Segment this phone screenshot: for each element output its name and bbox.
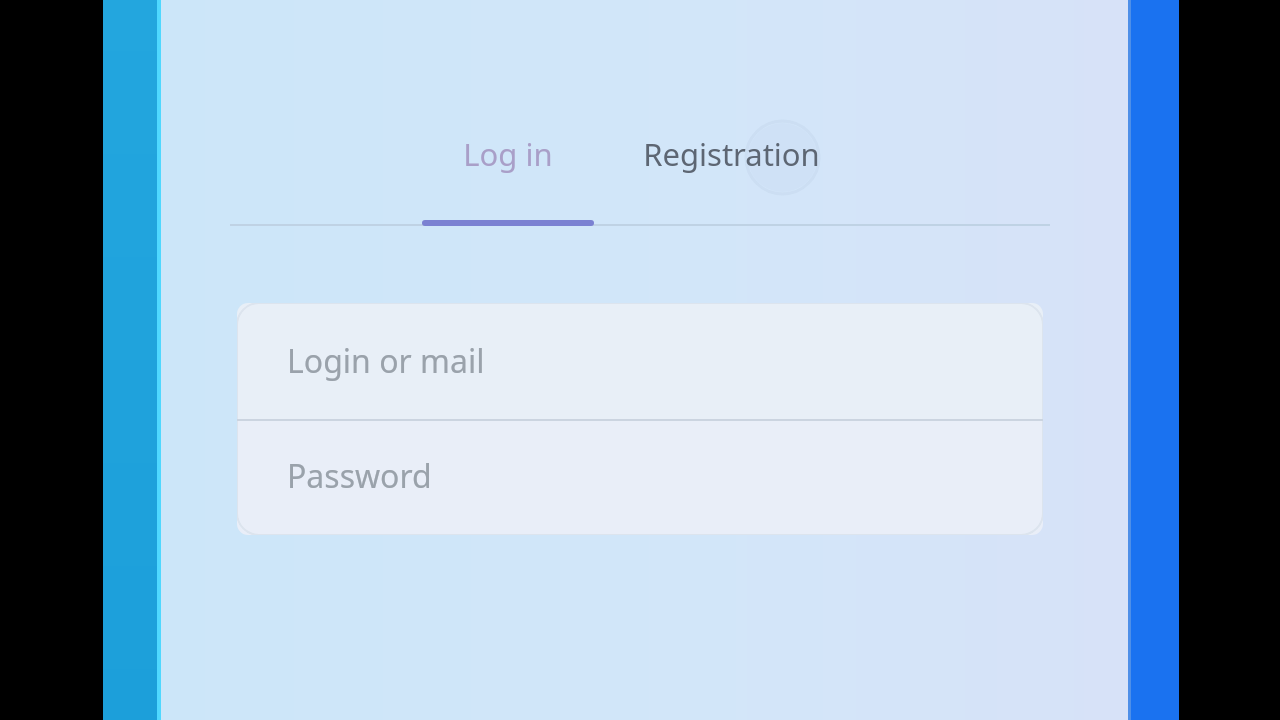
button[interactable]: Login or mail bbox=[237, 303, 1043, 419]
button[interactable]: Password bbox=[237, 421, 1043, 535]
staticText: Registration bbox=[643, 133, 820, 175]
button[interactable]: Log in bbox=[422, 126, 594, 228]
staticText: Login or mail bbox=[287, 339, 485, 383]
staticText: Log in bbox=[463, 133, 553, 175]
staticText: Password bbox=[287, 454, 432, 498]
button[interactable]: Registration bbox=[610, 126, 852, 228]
